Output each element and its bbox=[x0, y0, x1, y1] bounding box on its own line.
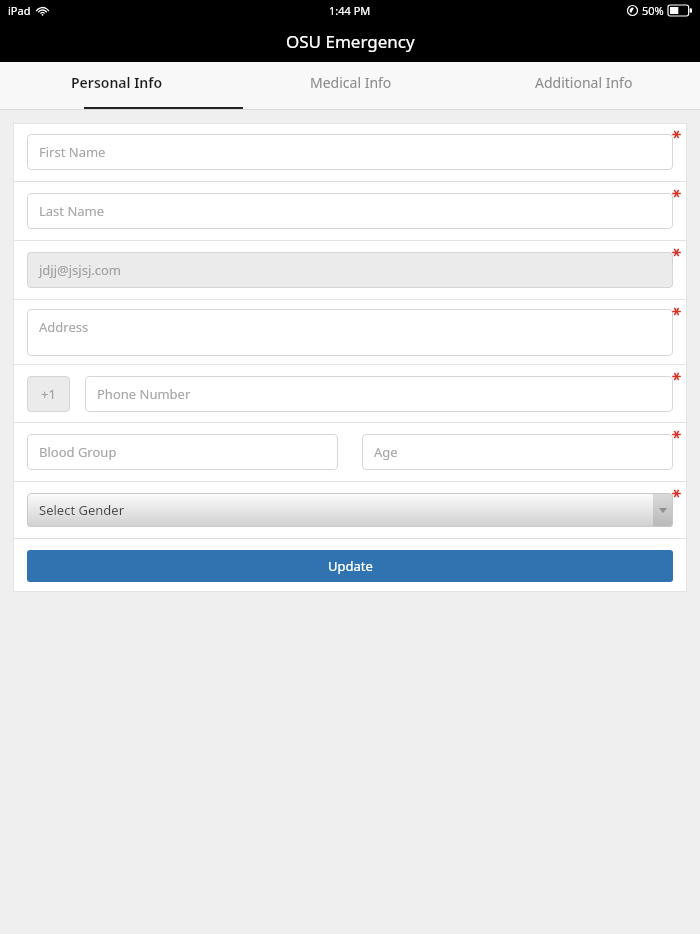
button[interactable]: Personal Info bbox=[0, 62, 234, 110]
staticText: jdjj@jsjsj.com bbox=[39, 261, 122, 279]
staticText: Age bbox=[374, 443, 398, 461]
staticText: Update bbox=[328, 557, 373, 575]
staticText: 1:44 PM bbox=[329, 3, 371, 18]
staticText: Select Gender bbox=[39, 501, 124, 519]
button[interactable]: Blood Group bbox=[27, 434, 338, 470]
staticText: +1 bbox=[41, 385, 56, 403]
button[interactable]: Address bbox=[27, 309, 673, 356]
staticText: Medical Info bbox=[310, 73, 392, 92]
button[interactable]: Phone Number bbox=[85, 376, 673, 412]
button[interactable]: Additional Info bbox=[467, 62, 700, 110]
button[interactable]: Update bbox=[27, 550, 673, 582]
button[interactable]: Last Name bbox=[27, 193, 673, 229]
staticText: Address bbox=[39, 318, 89, 336]
button[interactable]: Select Gender bbox=[27, 493, 673, 527]
button[interactable]: First Name bbox=[27, 134, 673, 170]
staticText: Phone Number bbox=[97, 385, 191, 403]
button[interactable]: Medical Info bbox=[234, 62, 467, 110]
staticText: 50% bbox=[642, 3, 664, 18]
button[interactable]: jdjj@jsjsj.com bbox=[27, 252, 673, 288]
button[interactable]: Age bbox=[362, 434, 673, 470]
button[interactable]: +1 bbox=[27, 376, 70, 412]
staticText: iPad bbox=[8, 3, 31, 18]
staticText: Blood Group bbox=[39, 443, 117, 461]
staticText: Last Name bbox=[39, 202, 105, 220]
staticText: Personal Info bbox=[71, 73, 163, 92]
staticText: OSU Emergency bbox=[286, 30, 415, 53]
staticText: Additional Info bbox=[535, 73, 633, 92]
staticText: First Name bbox=[39, 143, 106, 161]
